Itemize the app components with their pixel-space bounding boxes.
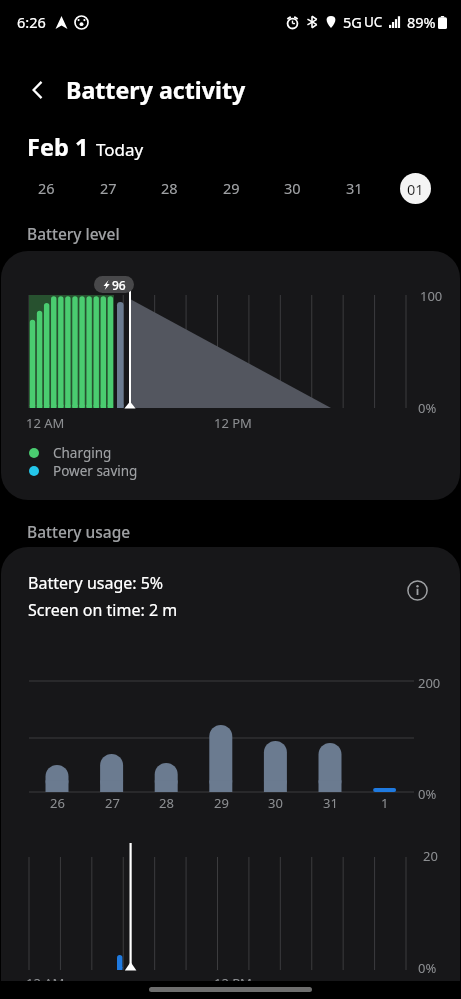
staticText: 27	[105, 794, 120, 812]
button[interactable]: 96	[1, 251, 460, 500]
staticText: 29	[214, 794, 229, 812]
staticText: 12 AM	[26, 414, 65, 432]
staticText: 100	[420, 287, 443, 305]
staticText: Battery level	[27, 223, 120, 244]
staticText: 0%	[418, 399, 437, 417]
button[interactable]: 28	[148, 167, 190, 209]
staticText: Charging	[53, 444, 112, 462]
staticText: 01	[407, 179, 424, 199]
staticText: 0%	[418, 785, 437, 803]
staticText: 12 PM	[214, 974, 252, 981]
staticText: 6:26	[17, 12, 46, 32]
staticText: Battery usage	[27, 521, 131, 542]
button[interactable]: 27	[87, 167, 129, 209]
button[interactable]: Back	[10, 62, 66, 118]
button[interactable]: 26	[25, 167, 67, 209]
staticText: 30	[284, 178, 301, 198]
staticText: 28	[159, 794, 174, 812]
staticText: 28	[161, 178, 178, 198]
staticText: Today	[96, 138, 144, 161]
staticText: Feb 1	[27, 131, 89, 163]
staticText: Battery activity	[66, 74, 246, 106]
staticText: 1	[381, 794, 389, 812]
staticText: Battery usage: 5%	[28, 572, 164, 594]
staticText: 96	[112, 277, 126, 293]
button[interactable]: Info	[405, 578, 429, 602]
staticText: 200	[418, 674, 441, 692]
staticText: 29	[223, 178, 240, 198]
staticText: 5G	[343, 12, 362, 32]
staticText: 26	[38, 178, 55, 198]
staticText: 89%	[407, 12, 436, 32]
staticText: 31	[346, 178, 363, 198]
button[interactable]: 31	[333, 167, 375, 209]
staticText: UC	[364, 13, 383, 31]
staticText: 0%	[418, 959, 437, 977]
button[interactable]: Battery usage: 5%	[1, 547, 460, 981]
button[interactable]: 30	[271, 167, 313, 209]
staticText: Screen on time: 2 m	[28, 599, 178, 621]
staticText: 20	[423, 847, 438, 865]
staticText: 27	[100, 178, 117, 198]
staticText: 31	[323, 794, 338, 812]
staticText: 12 PM	[214, 414, 252, 432]
staticText: 26	[50, 794, 65, 812]
staticText: Power saving	[53, 462, 138, 480]
staticText: 12 AM	[26, 974, 65, 981]
button[interactable]: 29	[210, 167, 252, 209]
staticText: 30	[268, 794, 283, 812]
button[interactable]: 01	[394, 167, 436, 209]
